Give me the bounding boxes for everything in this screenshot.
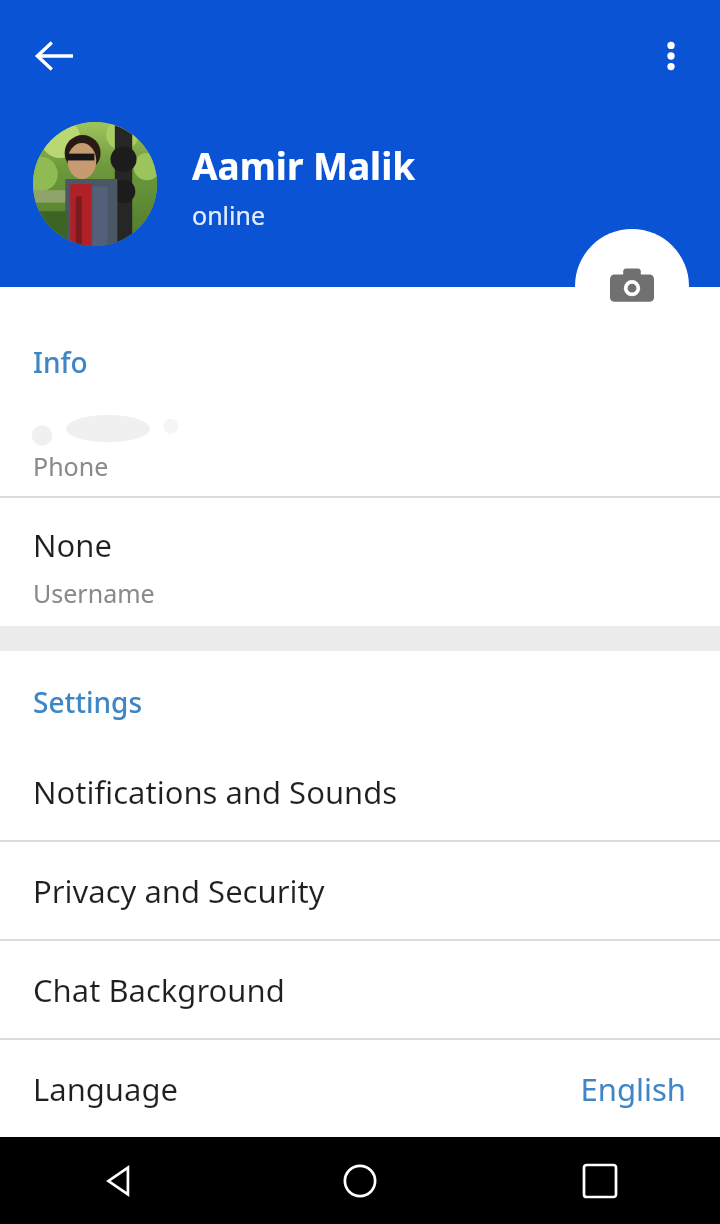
- button[interactable]: Back: [120, 1137, 720, 1224]
- staticText: Language: [33, 1068, 178, 1110]
- staticText: Chat Background: [33, 969, 285, 1011]
- button[interactable]: Recent apps: [480, 1137, 720, 1224]
- staticText: Aamir Malik: [192, 140, 416, 190]
- button[interactable]: More options: [634, 19, 708, 93]
- button[interactable]: None: [0, 498, 720, 626]
- button[interactable]: Home: [240, 1137, 480, 1224]
- staticText: Settings: [33, 683, 143, 721]
- button[interactable]: Back: [0, 1137, 240, 1224]
- button[interactable]: Privacy and Security: [0, 842, 720, 939]
- staticText: Info: [33, 343, 88, 381]
- button[interactable]: Language: [0, 1040, 720, 1137]
- staticText: online: [192, 198, 266, 232]
- staticText: Username: [33, 576, 155, 610]
- button[interactable]: Notifications and Sounds: [0, 743, 720, 840]
- button[interactable]: Phone: [0, 381, 720, 496]
- staticText: English: [580, 1068, 686, 1110]
- staticText: None: [33, 524, 112, 566]
- button[interactable]: Change profile photo: [575, 229, 689, 343]
- staticText: Privacy and Security: [33, 870, 325, 912]
- staticText: Notifications and Sounds: [33, 771, 398, 813]
- button[interactable]: Back: [18, 19, 92, 93]
- button[interactable]: Chat Background: [0, 941, 720, 1038]
- staticText: Phone: [33, 449, 109, 483]
